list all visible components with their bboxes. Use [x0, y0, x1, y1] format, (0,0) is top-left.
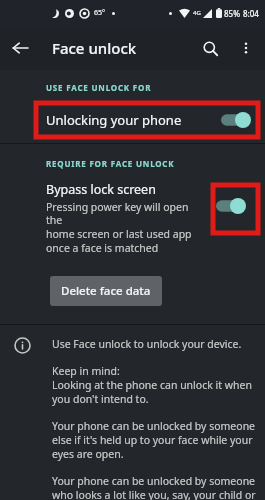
staticText: Pressing power key will open the	[46, 200, 207, 227]
staticText: Unlocking your phone	[46, 111, 221, 129]
staticText: Bypass lock screen	[46, 181, 156, 198]
staticText: Your phone can be unlocked by someone	[52, 474, 256, 488]
other: Toggle on	[216, 198, 246, 214]
staticText: Keep in mind:	[52, 364, 120, 378]
staticText: REQUIRE FOR FACE UNLOCK	[46, 158, 175, 169]
staticText: Looking at the phone can unlock it when	[52, 378, 252, 392]
button[interactable]: Search	[191, 29, 229, 67]
staticText: 4G	[193, 9, 201, 17]
staticText: else if it's held up to your face while …	[52, 433, 253, 447]
staticText: Face unlock	[52, 38, 137, 58]
staticText: 85%	[224, 8, 240, 19]
button[interactable]: More options	[229, 31, 263, 65]
other: Toggle on	[221, 112, 251, 128]
staticText: 65°	[94, 8, 106, 18]
staticText: Your phone can be unlocked by someone	[52, 419, 256, 433]
staticText: USE FACE UNLOCK FOR	[46, 82, 152, 93]
staticText: who looks a lot like you, say, your chil…	[52, 488, 257, 500]
staticText: home screen or last used app	[46, 227, 192, 241]
staticText: you don't intend to.	[52, 392, 149, 406]
staticText: 8:04	[243, 8, 259, 19]
button[interactable]: Unlocking your phone	[0, 103, 265, 137]
staticText: Use Face unlock to unlock your device.	[52, 337, 242, 351]
staticText: once a face is matched	[46, 241, 159, 255]
button[interactable]: Bypass lock screen	[0, 181, 265, 255]
button[interactable]: Back	[0, 28, 40, 68]
staticText: Delete face data	[61, 283, 151, 299]
staticText: eyes are open.	[52, 447, 124, 461]
button[interactable]: Delete face data	[50, 276, 162, 306]
